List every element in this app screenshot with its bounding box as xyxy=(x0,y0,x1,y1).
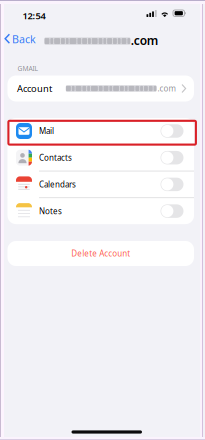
staticText: Delete Account xyxy=(71,248,130,259)
staticText: GMAIL xyxy=(17,64,37,73)
staticText: Notes xyxy=(39,206,62,216)
button[interactable]: Back xyxy=(0,28,40,50)
staticText: Back xyxy=(12,32,36,46)
staticText: .com xyxy=(157,83,175,94)
staticText: Mail xyxy=(39,126,54,136)
staticText: Account xyxy=(17,82,52,95)
staticText: 12:54 xyxy=(22,9,45,22)
button[interactable]: Notes xyxy=(7,198,194,224)
button[interactable]: Account xyxy=(7,75,194,101)
button[interactable]: Contacts xyxy=(7,145,194,171)
staticText: Calendars xyxy=(39,179,76,190)
button[interactable]: Calendars xyxy=(7,171,194,197)
staticText: Contacts xyxy=(39,152,72,163)
staticText: .com xyxy=(131,32,159,48)
button[interactable]: Delete Account xyxy=(7,241,194,266)
button[interactable]: Mail xyxy=(7,118,194,144)
